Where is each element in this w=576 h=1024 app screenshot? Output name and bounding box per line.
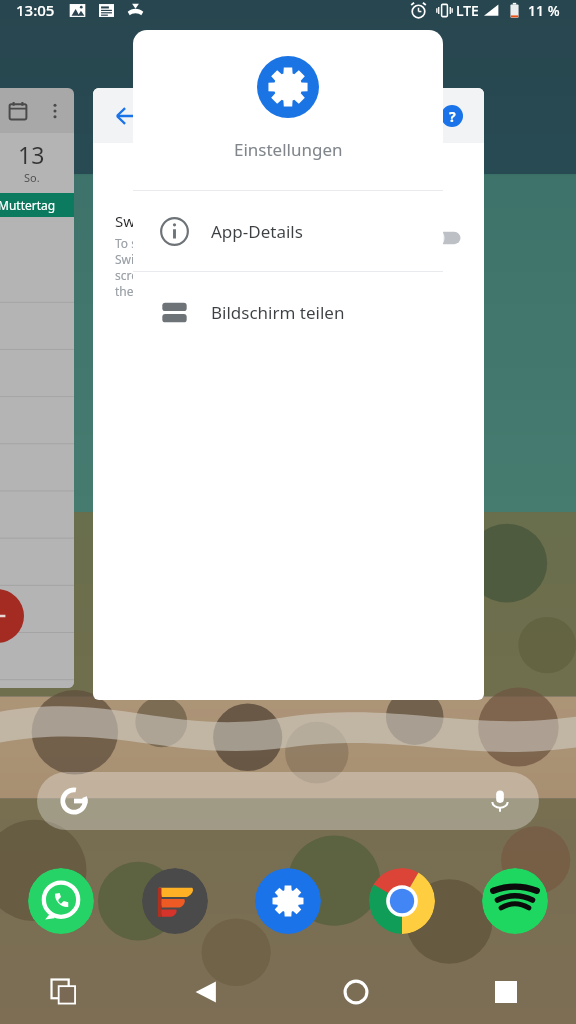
staticText: Muttertag <box>0 197 56 213</box>
staticText: 11 % <box>528 1 560 20</box>
button[interactable]: 2 <box>0 88 74 688</box>
staticText: 13 <box>18 139 45 170</box>
staticText: ? <box>449 107 456 126</box>
button[interactable] <box>422 227 466 249</box>
button[interactable]: Google Search <box>37 772 539 830</box>
staticText: App-Details <box>211 220 303 243</box>
button[interactable]: Chrome <box>369 868 435 934</box>
button[interactable]: Help <box>434 98 470 134</box>
button[interactable]: Voice search <box>485 786 515 816</box>
staticText: To switch apps, swipe up on the Home but… <box>115 235 408 299</box>
button[interactable]: Settings <box>255 868 321 934</box>
button[interactable]: App-Details <box>133 191 443 271</box>
button[interactable]: Home <box>332 968 380 1016</box>
staticText: Einstellungen <box>234 138 343 161</box>
button[interactable]: Swipe up on Home button <box>115 211 466 299</box>
button[interactable]: Files <box>142 868 208 934</box>
button[interactable]: Back <box>107 96 147 136</box>
staticText: Swipe up on Home button <box>115 211 300 231</box>
staticText: 13:05 <box>16 0 55 20</box>
button[interactable]: Back <box>93 88 484 700</box>
staticText: Bildschirm teilen <box>211 301 345 324</box>
button[interactable]: Recent apps <box>40 968 88 1016</box>
button[interactable]: Screenshot <box>482 968 530 1016</box>
button[interactable]: Bildschirm teilen <box>133 272 443 352</box>
staticText: So. <box>24 170 40 185</box>
button[interactable]: Back <box>182 968 230 1016</box>
button[interactable]: WhatsApp <box>28 868 94 934</box>
staticText: LTE <box>456 1 479 20</box>
button[interactable]: Spotify <box>482 868 548 934</box>
other: Google Search <box>59 786 89 816</box>
button[interactable]: Create event <box>0 589 24 643</box>
